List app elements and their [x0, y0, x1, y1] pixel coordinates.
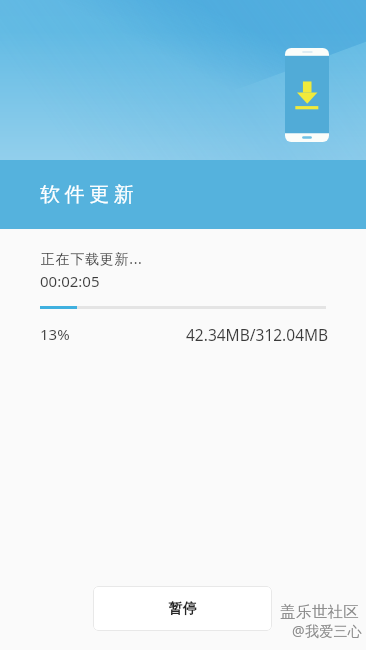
- staticText: 暂停: [168, 600, 197, 618]
- staticText: 正在下载更新...: [41, 249, 143, 268]
- other: Software update: [285, 48, 329, 142]
- staticText: 13%: [40, 324, 70, 344]
- staticText: @我爱三心: [292, 621, 363, 640]
- button[interactable]: 暂停: [93, 586, 272, 631]
- staticText: 软件更新: [38, 182, 136, 207]
- staticText: 盖乐世社区: [280, 602, 359, 622]
- staticText: 00:02:05: [40, 271, 100, 291]
- staticText: 42.34MB/312.04MB: [186, 324, 329, 345]
